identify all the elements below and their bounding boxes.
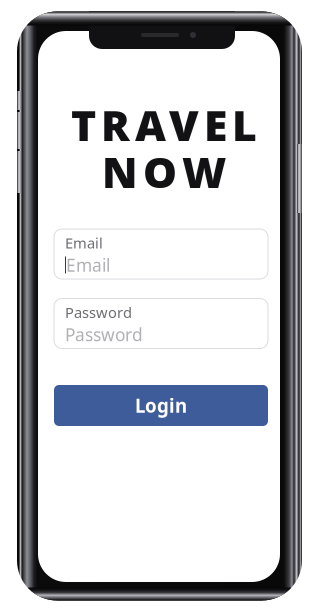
staticText: TRAVEL xyxy=(71,96,257,153)
staticText: Password xyxy=(65,302,132,322)
button[interactable]: Password xyxy=(54,298,268,348)
staticText: Email xyxy=(66,253,110,276)
staticText: NOW xyxy=(102,143,226,200)
button[interactable]: Login xyxy=(54,385,268,426)
staticText: Email xyxy=(65,233,103,252)
staticText: Password xyxy=(65,323,143,346)
button[interactable]: Email xyxy=(54,229,268,279)
staticText: Login xyxy=(135,393,187,418)
